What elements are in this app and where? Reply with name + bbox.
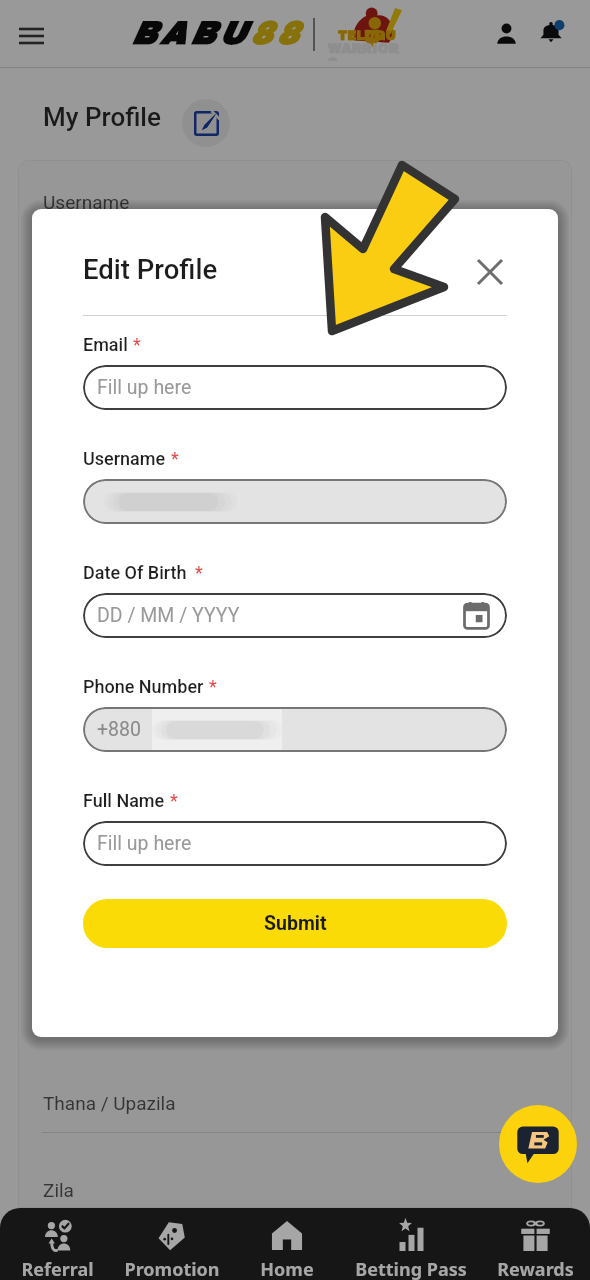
staticText: * <box>195 562 203 583</box>
staticText: * <box>170 790 178 811</box>
staticText: My Profile <box>43 102 161 132</box>
staticText: Thana / Upazila <box>43 1092 176 1114</box>
staticText: Username <box>43 191 130 213</box>
staticText: Date Of Birth <box>83 562 187 583</box>
button[interactable]: Submit <box>83 899 507 948</box>
staticText: Promotion <box>124 1257 220 1280</box>
staticText: Betting Pass <box>355 1257 467 1280</box>
button[interactable]: Chat support <box>499 1105 577 1183</box>
button[interactable]: +880 <box>83 707 507 752</box>
button[interactable] <box>83 479 507 524</box>
staticText: * <box>133 334 141 355</box>
staticText: 88 <box>250 17 303 51</box>
button[interactable]: Promotion <box>113 1208 231 1280</box>
button[interactable]: Fill up here <box>83 365 507 410</box>
staticText: +880 <box>97 718 141 741</box>
staticText: Submit <box>264 912 327 935</box>
staticText: Home <box>260 1257 314 1280</box>
staticText: TELUGU <box>338 29 397 42</box>
button[interactable]: Menu <box>9 14 53 58</box>
staticText: * <box>209 676 217 697</box>
staticText: BABU <box>131 17 250 51</box>
staticText: * <box>171 448 179 469</box>
button[interactable]: Close <box>467 249 513 295</box>
button[interactable]: Fill up here <box>83 821 507 866</box>
staticText: WARRIORS <box>328 42 406 61</box>
button[interactable]: Rewards <box>476 1208 590 1280</box>
staticText: Referral <box>21 1257 94 1280</box>
staticText: Full Name <box>83 790 165 811</box>
button[interactable]: Account <box>484 11 528 55</box>
staticText: Edit Profile <box>83 253 218 285</box>
staticText: Phone Number <box>83 676 204 697</box>
button[interactable]: Home <box>228 1208 346 1280</box>
button[interactable]: Edit profile <box>182 99 230 147</box>
staticText: Fill up here <box>97 376 192 399</box>
button[interactable]: Betting Pass <box>352 1208 470 1280</box>
staticText: Email <box>83 334 128 355</box>
staticText: Rewards <box>497 1257 574 1280</box>
staticText: DD / MM / YYYY <box>97 604 240 627</box>
staticText: Username <box>83 448 166 469</box>
button[interactable]: DD / MM / YYYY <box>83 593 507 638</box>
button[interactable]: Referral <box>0 1208 116 1280</box>
button[interactable]: Notifications <box>529 11 573 55</box>
staticText: Zila <box>43 1179 74 1201</box>
staticText: Fill up here <box>97 832 192 855</box>
